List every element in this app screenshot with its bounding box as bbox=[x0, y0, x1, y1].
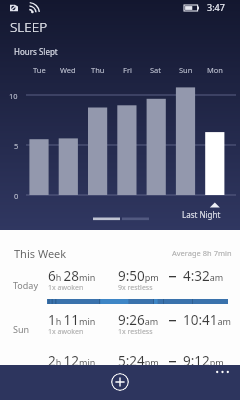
staticText: 5:24pm bbox=[118, 352, 159, 370]
staticText: Today bbox=[13, 279, 38, 291]
button[interactable]: Today bbox=[0, 268, 240, 312]
staticText: This Week bbox=[14, 246, 67, 261]
staticText: SLEEP bbox=[10, 18, 48, 36]
button[interactable]: Sat bbox=[0, 353, 240, 394]
staticText: Thu bbox=[91, 65, 105, 75]
button[interactable]: Sun bbox=[0, 312, 240, 353]
staticText: Wed bbox=[60, 65, 76, 75]
button[interactable]: Add sleep entry bbox=[111, 373, 129, 391]
staticText: 1x awoken bbox=[48, 283, 84, 293]
staticText: Hours Slept bbox=[14, 46, 58, 57]
staticText: 0 bbox=[14, 191, 19, 201]
staticText: 3x restless bbox=[118, 368, 153, 378]
staticText: 1x restless bbox=[118, 327, 153, 337]
staticText: 1x awoken bbox=[48, 327, 84, 337]
staticText: Sat bbox=[150, 65, 162, 75]
staticText: Last Night bbox=[182, 209, 221, 220]
button[interactable]: More options bbox=[208, 365, 236, 379]
staticText: Tue bbox=[33, 65, 46, 75]
staticText: Sun bbox=[13, 323, 30, 335]
staticText: 5 bbox=[14, 141, 19, 151]
staticText: 2h 12min bbox=[48, 352, 96, 370]
staticText: Fri bbox=[123, 65, 132, 75]
staticText: 3:47 bbox=[207, 1, 225, 13]
staticText: Average 8h 7min bbox=[172, 248, 232, 258]
staticText: 10 bbox=[9, 91, 18, 101]
staticText: 9:26am bbox=[118, 311, 159, 329]
staticText: Sat bbox=[13, 364, 27, 376]
staticText: 9:12pm bbox=[183, 352, 224, 370]
staticText: Sun bbox=[179, 65, 193, 75]
staticText: 1h 11min bbox=[48, 311, 96, 329]
staticText: 10:41am bbox=[183, 311, 231, 329]
staticText: Mon bbox=[207, 65, 223, 75]
staticText: 4:32am bbox=[183, 267, 224, 285]
staticText: 9x restless bbox=[118, 283, 153, 293]
staticText: 9:50pm bbox=[118, 267, 159, 285]
staticText: 6h 28min bbox=[48, 267, 96, 285]
